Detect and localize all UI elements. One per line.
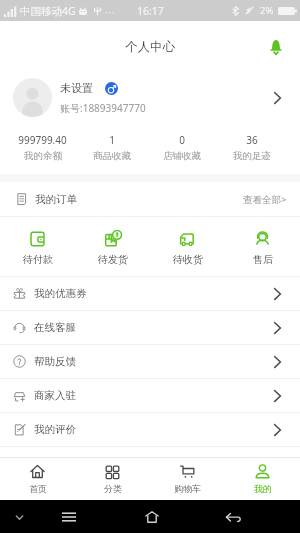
button[interactable]: 36 [217, 123, 287, 174]
button[interactable]: 0 [147, 123, 217, 174]
button[interactable]: 售后 [225, 217, 300, 276]
staticText: 我的评价 [34, 423, 76, 436]
staticText: 36 [246, 133, 258, 147]
staticText: 1 [109, 133, 115, 147]
button[interactable]: 我的优惠券 [0, 277, 300, 310]
staticText: 店铺收藏 [163, 150, 201, 162]
staticText: 商品收藏 [93, 150, 131, 162]
button[interactable]: 购物车 [150, 464, 225, 494]
button[interactable]: 待收货 [150, 217, 225, 276]
button[interactable]: Home [140, 505, 164, 529]
staticText: 在线客服 [34, 321, 76, 334]
staticText: 我的 [254, 483, 272, 494]
staticText: 商家入驻 [34, 389, 76, 402]
button[interactable]: 1 [77, 123, 147, 174]
button[interactable]: 商家入驻 [0, 379, 300, 412]
button[interactable]: 首页 [0, 464, 75, 494]
staticText: 购物车 [174, 483, 201, 494]
button[interactable]: 999799.40 [8, 123, 77, 174]
staticText: 个人中心 [125, 39, 175, 55]
button[interactable]: 待付款 [0, 217, 75, 276]
staticText: 首页 [29, 483, 47, 494]
staticText: 查看全部> [243, 193, 287, 206]
staticText: 16:17 [137, 4, 164, 18]
staticText: 我的订单 [35, 193, 77, 206]
staticText: 分类 [104, 483, 122, 494]
staticText: 0 [179, 133, 185, 147]
staticText: 我的足迹 [233, 150, 271, 162]
button[interactable]: 未设置 [0, 72, 300, 123]
button[interactable]: 在线客服 [0, 311, 300, 344]
button[interactable]: 我的评价 [0, 413, 300, 446]
staticText: 我的余额 [24, 150, 62, 162]
staticText: 账号:18893947770 [60, 101, 146, 115]
button[interactable]: 我的 [225, 464, 300, 494]
button[interactable]: 帮助反馈 [0, 345, 300, 378]
staticText: 中国移动4G [20, 4, 76, 18]
button[interactable]: 待发货 [75, 217, 150, 276]
staticText: 我的优惠券 [34, 287, 87, 300]
staticText: 2% [260, 4, 274, 17]
button[interactable]: Notifications [263, 34, 289, 60]
staticText: 帮助反馈 [34, 355, 76, 368]
button[interactable]: Recent apps [57, 505, 81, 529]
staticText: 999799.40 [18, 133, 67, 147]
staticText: 售后 [253, 253, 273, 266]
button[interactable]: Back [221, 505, 245, 529]
staticText: 待收货 [173, 253, 203, 266]
button[interactable]: 我的订单 [0, 182, 300, 216]
button[interactable]: Hide keyboard [7, 505, 31, 529]
button[interactable]: 分类 [75, 464, 150, 494]
staticText: 未设置 [60, 81, 93, 95]
staticText: 待发货 [98, 253, 128, 266]
staticText: 待付款 [23, 253, 53, 266]
